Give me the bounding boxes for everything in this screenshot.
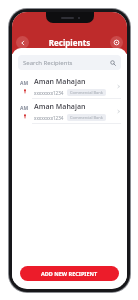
staticText: Search Recipients: [23, 59, 110, 67]
staticText: Aman Mahajan: [34, 77, 86, 87]
button[interactable]: ADD NEW RECIPIENT: [20, 266, 119, 281]
staticText: Aman Mahajan: [34, 102, 86, 112]
button[interactable]: Refresh: [110, 36, 123, 49]
other: Open recipient: [116, 109, 121, 114]
staticText: xxxxxxxx1234: [34, 90, 64, 96]
button[interactable]: AM: [12, 99, 127, 123]
staticText: xxxxxxxx1234: [34, 115, 64, 121]
other: Open recipient: [116, 84, 121, 89]
button[interactable]: Back: [16, 36, 29, 49]
staticText: ADD NEW RECIPIENT: [41, 270, 98, 277]
button[interactable]: AM: [12, 74, 127, 98]
button[interactable]: Search Recipients: [18, 55, 121, 70]
staticText: AM: [20, 80, 29, 87]
staticText: AM: [20, 105, 29, 112]
staticText: Commercial Bank: [70, 115, 103, 120]
staticText: Recipients: [29, 37, 110, 48]
staticText: Commercial Bank: [70, 90, 103, 95]
